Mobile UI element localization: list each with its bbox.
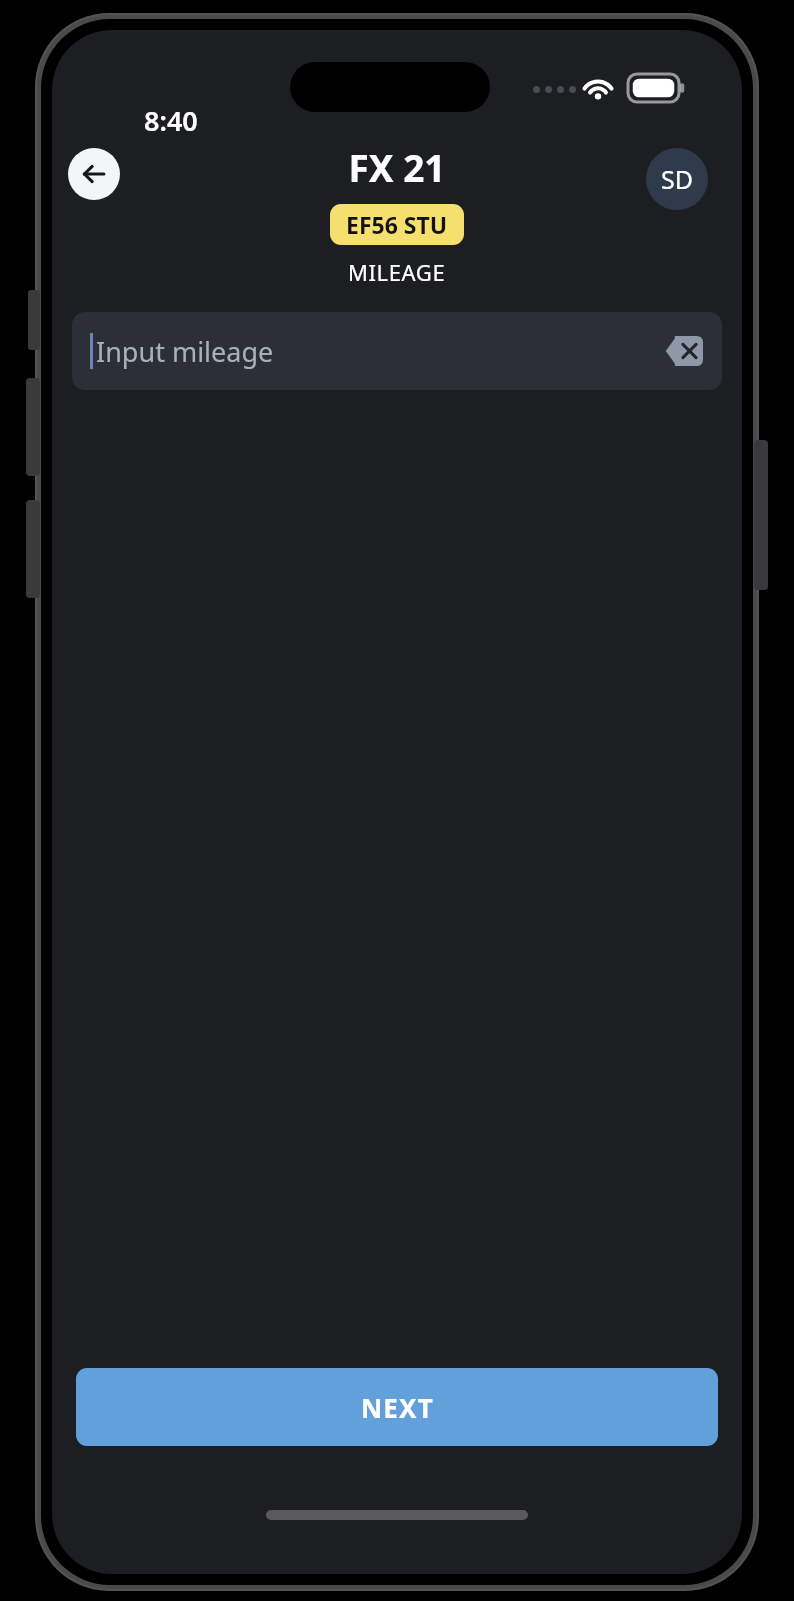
button[interactable]: Input mileage bbox=[72, 312, 722, 390]
button[interactable]: Back bbox=[68, 148, 120, 200]
staticText: FX 21 bbox=[348, 142, 446, 192]
button[interactable]: NEXT bbox=[76, 1368, 718, 1446]
staticText: NEXT bbox=[361, 1390, 434, 1425]
button[interactable]: Profile SD bbox=[646, 148, 708, 210]
staticText: Input mileage bbox=[96, 333, 274, 370]
staticText: SD bbox=[661, 162, 693, 196]
staticText: 8:40 bbox=[144, 102, 198, 139]
staticText: MILEAGE bbox=[348, 257, 446, 287]
button[interactable]: Clear bbox=[664, 335, 704, 367]
staticText: EF56 STU bbox=[346, 209, 448, 240]
